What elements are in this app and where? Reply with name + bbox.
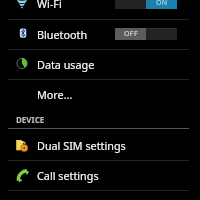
staticText: Dual SIM settings <box>37 138 126 153</box>
button[interactable]: More… <box>0 79 200 109</box>
staticText: More… <box>37 87 73 102</box>
staticText: Data usage <box>37 57 95 72</box>
button[interactable]: OFF <box>115 28 177 40</box>
button[interactable]: Wi-Fi <box>0 0 200 18</box>
staticText: DEVICE <box>16 114 45 125</box>
button[interactable]: Bluetooth <box>0 19 200 49</box>
staticText: OFF <box>124 29 138 39</box>
staticText: Call settings <box>37 168 99 183</box>
button[interactable]: ON <box>115 0 177 9</box>
button[interactable]: Call settings <box>0 160 200 190</box>
staticText: ON <box>156 0 168 8</box>
staticText: Bluetooth <box>37 27 88 42</box>
staticText: Wi-Fi <box>37 0 62 11</box>
button[interactable]: Data usage <box>0 49 200 79</box>
button[interactable]: Dual SIM settings <box>0 130 200 160</box>
